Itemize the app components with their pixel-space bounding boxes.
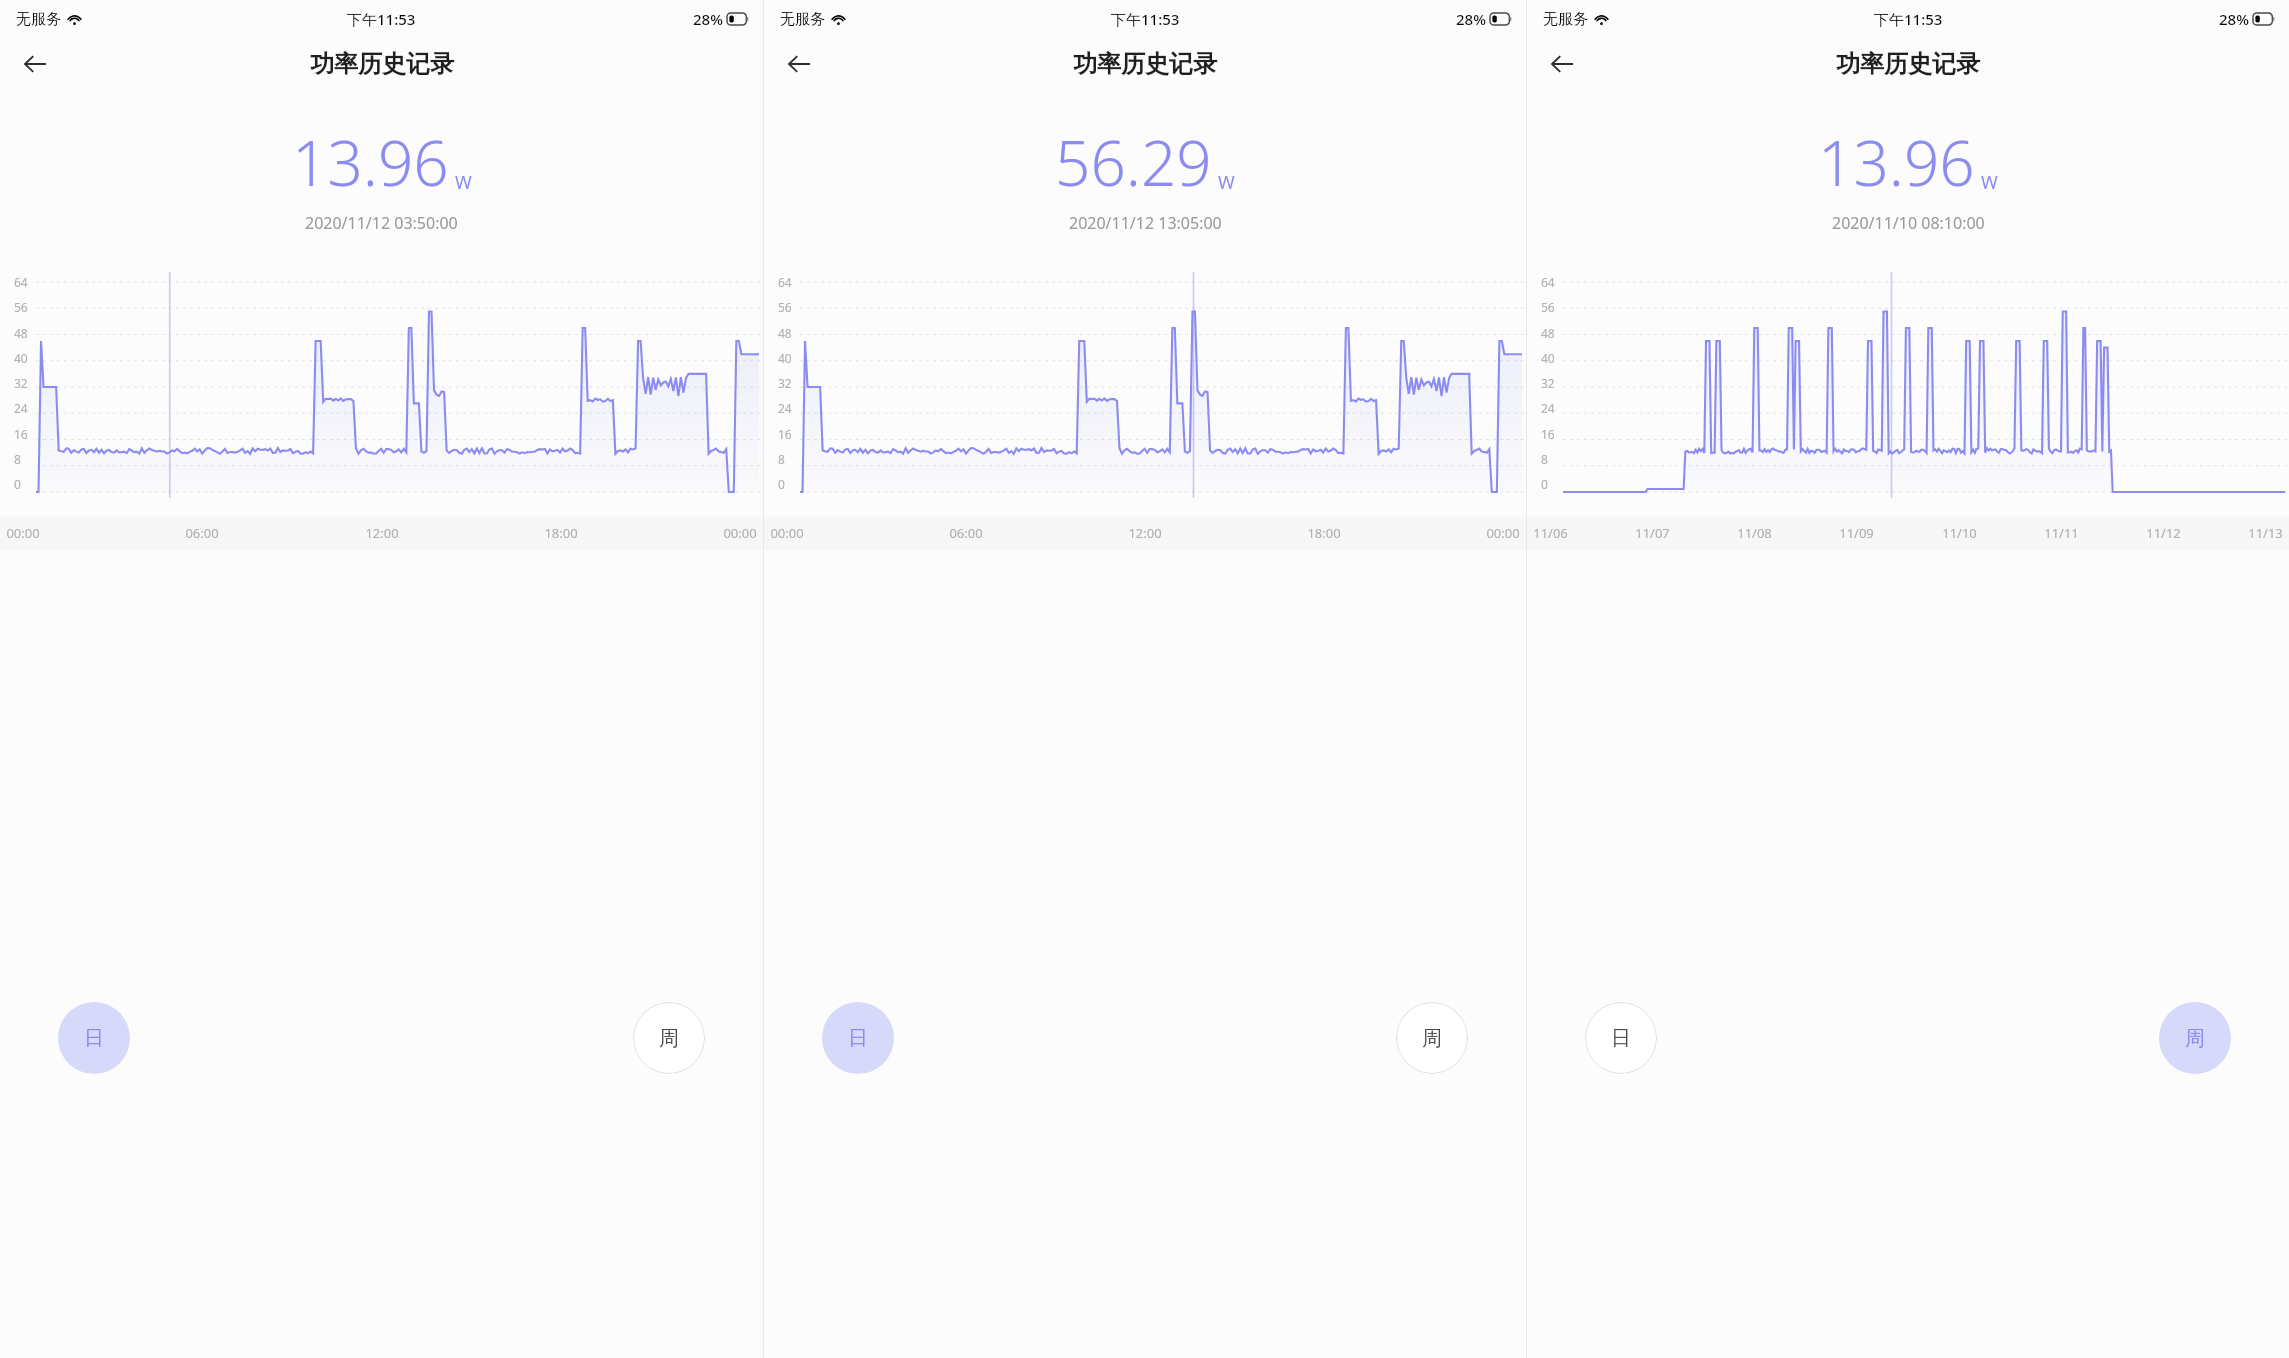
staticText: 下午11:53	[1874, 9, 1943, 29]
staticText: 周	[1422, 1026, 1442, 1051]
staticText: W	[1981, 170, 1998, 195]
staticText: 18:00	[544, 524, 578, 542]
staticText: 28%	[693, 9, 723, 29]
staticText: 48	[778, 325, 792, 341]
button[interactable]: Back	[1539, 41, 1585, 87]
button[interactable]: Back	[776, 41, 822, 87]
staticText: 56.29	[1055, 120, 1212, 204]
staticText: 16	[14, 426, 28, 442]
staticText: 11/07	[1635, 524, 1670, 542]
staticText: 无服务	[16, 10, 61, 29]
staticText: 0	[14, 476, 21, 492]
button[interactable]: 周	[1396, 1002, 1468, 1074]
button[interactable]: 日	[1585, 1002, 1657, 1074]
staticText: 40	[1541, 350, 1555, 366]
staticText: 64	[1541, 274, 1555, 290]
staticText: 32	[1541, 375, 1555, 391]
staticText: 12:00	[365, 524, 399, 542]
staticText: 8	[1541, 451, 1548, 467]
staticText: 日	[848, 1026, 868, 1051]
button[interactable]: 日	[58, 1002, 130, 1074]
staticText: 56	[778, 299, 792, 315]
staticText: 48	[1541, 325, 1555, 341]
staticText: 48	[14, 325, 28, 341]
staticText: 13.96	[1818, 120, 1975, 204]
staticText: 64	[14, 274, 28, 290]
staticText: 18:00	[1307, 524, 1341, 542]
staticText: 32	[778, 375, 792, 391]
button[interactable]: 周	[2159, 1002, 2231, 1074]
staticText: 0	[778, 476, 785, 492]
staticText: 2020/11/12 03:50:00	[305, 212, 458, 234]
staticText: 06:00	[185, 524, 219, 542]
staticText: 00:00	[6, 524, 40, 542]
staticText: 0	[1541, 476, 1548, 492]
staticText: 11/11	[2044, 524, 2079, 542]
staticText: 8	[14, 451, 21, 467]
staticText: 32	[14, 375, 28, 391]
staticText: 40	[778, 350, 792, 366]
staticText: 12:00	[1128, 524, 1162, 542]
staticText: 无服务	[1543, 10, 1588, 29]
staticText: 11/08	[1737, 524, 1772, 542]
staticText: 8	[778, 451, 785, 467]
staticText: 2020/11/10 08:10:00	[1832, 212, 1985, 234]
staticText: 下午11:53	[1111, 9, 1180, 29]
staticText: 24	[778, 400, 792, 416]
staticText: 28%	[2219, 9, 2249, 29]
staticText: 下午11:53	[347, 9, 416, 29]
staticText: 日	[84, 1026, 104, 1051]
staticText: 11/09	[1839, 524, 1874, 542]
staticText: 11/06	[1533, 524, 1568, 542]
staticText: 周	[659, 1026, 679, 1051]
staticText: 16	[778, 426, 792, 442]
staticText: 周	[2185, 1026, 2205, 1051]
staticText: 06:00	[949, 524, 983, 542]
staticText: 11/13	[2248, 524, 2283, 542]
staticText: 无服务	[780, 10, 825, 29]
staticText: 11/12	[2146, 524, 2181, 542]
staticText: 00:00	[770, 524, 804, 542]
staticText: 40	[14, 350, 28, 366]
staticText: W	[455, 170, 472, 195]
button[interactable]: 日	[822, 1002, 894, 1074]
staticText: 28%	[1456, 9, 1486, 29]
staticText: 功率历史记录	[1073, 49, 1217, 79]
staticText: 13.96	[292, 120, 449, 204]
staticText: 24	[14, 400, 28, 416]
button[interactable]: Back	[12, 41, 58, 87]
staticText: 24	[1541, 400, 1555, 416]
staticText: 11/10	[1942, 524, 1977, 542]
button[interactable]: 周	[633, 1002, 705, 1074]
staticText: 功率历史记录	[1836, 49, 1980, 79]
staticText: 64	[778, 274, 792, 290]
staticText: 56	[14, 299, 28, 315]
staticText: 00:00	[723, 524, 757, 542]
staticText: 16	[1541, 426, 1555, 442]
staticText: 00:00	[1486, 524, 1520, 542]
staticText: 2020/11/12 13:05:00	[1069, 212, 1222, 234]
staticText: 56	[1541, 299, 1555, 315]
staticText: 日	[1611, 1026, 1631, 1051]
staticText: 功率历史记录	[310, 49, 454, 79]
staticText: W	[1218, 170, 1235, 195]
